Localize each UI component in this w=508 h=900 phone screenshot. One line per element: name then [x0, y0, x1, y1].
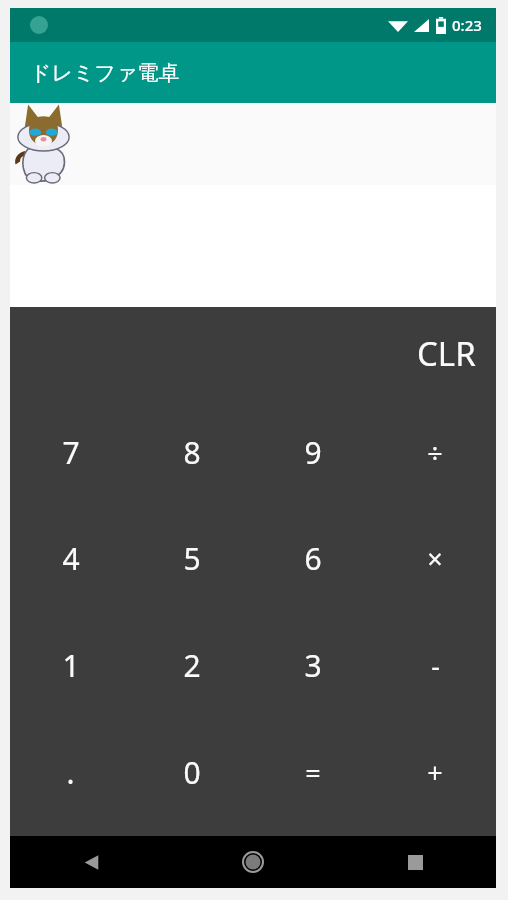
staticText: 5 — [183, 538, 201, 579]
staticText: × — [427, 540, 443, 577]
button[interactable]: × — [374, 505, 496, 612]
staticText: 0:23 — [452, 15, 482, 35]
button[interactable]: 3 — [252, 612, 374, 719]
button[interactable]: . — [10, 719, 131, 826]
button[interactable]: 6 — [252, 505, 374, 612]
staticText: 4 — [62, 538, 80, 579]
staticText: . — [66, 752, 75, 793]
button[interactable]: 4 — [10, 505, 131, 612]
button[interactable]: ÷ — [374, 399, 496, 505]
staticText: 3 — [304, 645, 322, 686]
staticText: 9 — [304, 432, 322, 473]
button[interactable]: 5 — [131, 505, 252, 612]
button[interactable]: 2 — [131, 612, 252, 719]
button[interactable]: CLR — [417, 331, 476, 376]
staticText: + — [427, 754, 443, 791]
button[interactable]: 7 — [10, 399, 131, 505]
staticText: ドレミファ電卓 — [30, 60, 180, 86]
staticText: 0 — [183, 752, 201, 793]
staticText: 8 — [183, 432, 201, 473]
button[interactable]: Recent apps — [334, 836, 496, 888]
button[interactable]: = — [252, 719, 374, 826]
staticText: 7 — [62, 432, 80, 473]
staticText: - — [431, 647, 440, 684]
button[interactable]: 8 — [131, 399, 252, 505]
button[interactable]: Back — [10, 836, 172, 888]
staticText: = — [305, 754, 321, 791]
staticText: 2 — [183, 645, 201, 686]
button[interactable]: - — [374, 612, 496, 719]
staticText: 1 — [62, 645, 80, 686]
button[interactable]: 9 — [252, 399, 374, 505]
button[interactable]: 1 — [10, 612, 131, 719]
button[interactable]: Home — [172, 836, 334, 888]
staticText: ÷ — [427, 434, 443, 471]
staticText: CLR — [417, 331, 476, 376]
button[interactable]: 0 — [131, 719, 252, 826]
button[interactable]: + — [374, 719, 496, 826]
staticText: 6 — [304, 538, 322, 579]
